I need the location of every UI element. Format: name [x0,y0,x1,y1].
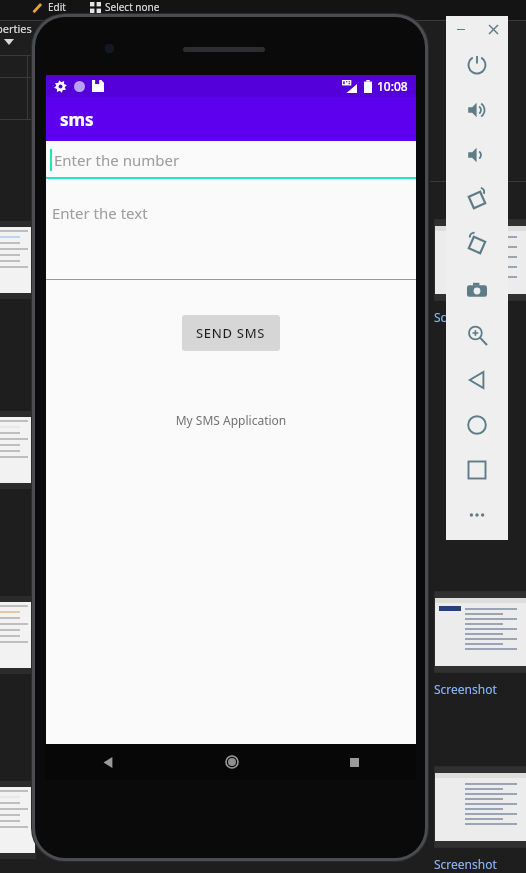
button[interactable]: SEND SMS [182,315,280,351]
button[interactable]: Rotate left [446,177,508,222]
button[interactable]: Volume up [446,87,508,132]
staticText: Edit [48,0,66,14]
button[interactable]: Take screenshot [446,267,508,312]
button[interactable]: Back [46,744,170,780]
staticText: Enter the number [54,150,180,170]
button[interactable]: Enter the text [46,197,416,280]
button[interactable]: Power [446,42,508,87]
button[interactable]: Recent apps [293,744,416,780]
staticText: 10:08 [377,78,408,94]
button[interactable]: Back [446,357,508,402]
staticText: SEND SMS [196,324,266,342]
staticText: Screenshot [434,856,497,872]
staticText: Screenshot [434,309,497,325]
button[interactable]: Home [170,744,293,780]
button[interactable]: Close [484,20,502,38]
staticText: Select none [105,0,160,14]
staticText: sms [60,108,94,131]
button[interactable]: Rotate right [446,222,508,267]
button[interactable]: Overview [446,447,508,492]
staticText: perties [0,21,32,36]
button[interactable]: Minimize [452,20,470,38]
button[interactable]: Home [446,402,508,447]
staticText: My SMS Application [46,412,416,428]
button[interactable]: More [446,492,508,537]
staticText: Enter the text [52,203,148,223]
button[interactable]: Volume down [446,132,508,177]
staticText: Screenshot [434,681,497,697]
button[interactable]: Zoom [446,312,508,357]
button[interactable]: Enter the number [46,141,416,179]
